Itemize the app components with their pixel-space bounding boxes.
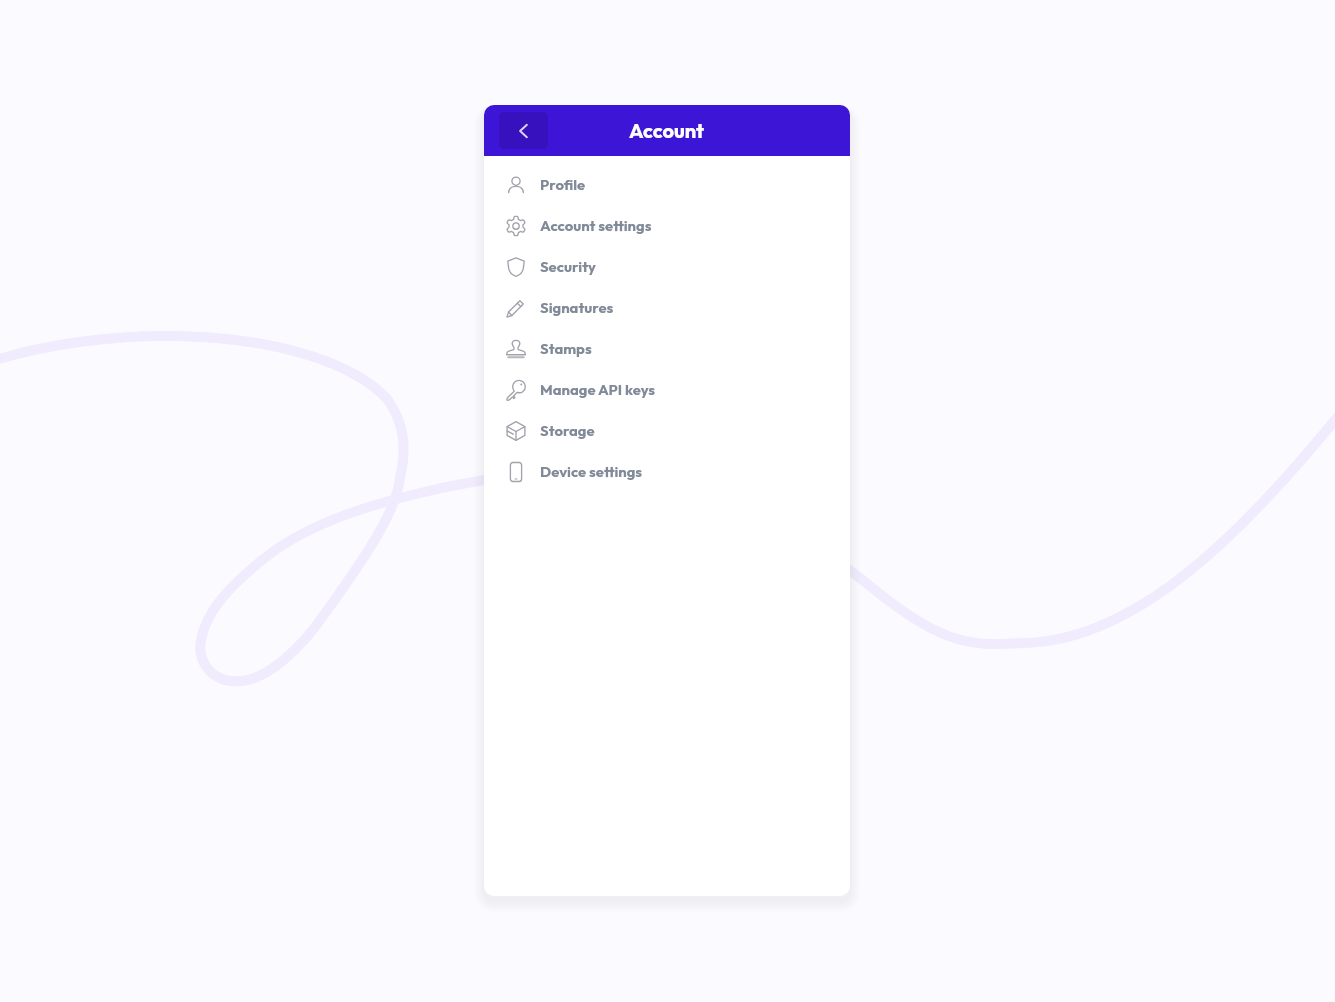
button[interactable]: Back (499, 112, 548, 149)
staticText: Security (540, 257, 596, 276)
button[interactable]: Signatures (484, 287, 850, 328)
staticText: Storage (540, 421, 595, 440)
button[interactable]: Device settings (484, 451, 850, 492)
staticText: Account (629, 118, 705, 143)
staticText: Account settings (540, 216, 652, 235)
button[interactable]: Security (484, 246, 850, 287)
staticText: Signatures (540, 298, 614, 317)
staticText: Profile (540, 175, 586, 194)
button[interactable]: Manage API keys (484, 369, 850, 410)
button[interactable]: Profile (484, 164, 850, 205)
staticText: Device settings (540, 462, 643, 481)
staticText: Manage API keys (540, 380, 656, 399)
button[interactable]: Storage (484, 410, 850, 451)
button[interactable]: Stamps (484, 328, 850, 369)
staticText: Stamps (540, 339, 592, 358)
button[interactable]: Account settings (484, 205, 850, 246)
